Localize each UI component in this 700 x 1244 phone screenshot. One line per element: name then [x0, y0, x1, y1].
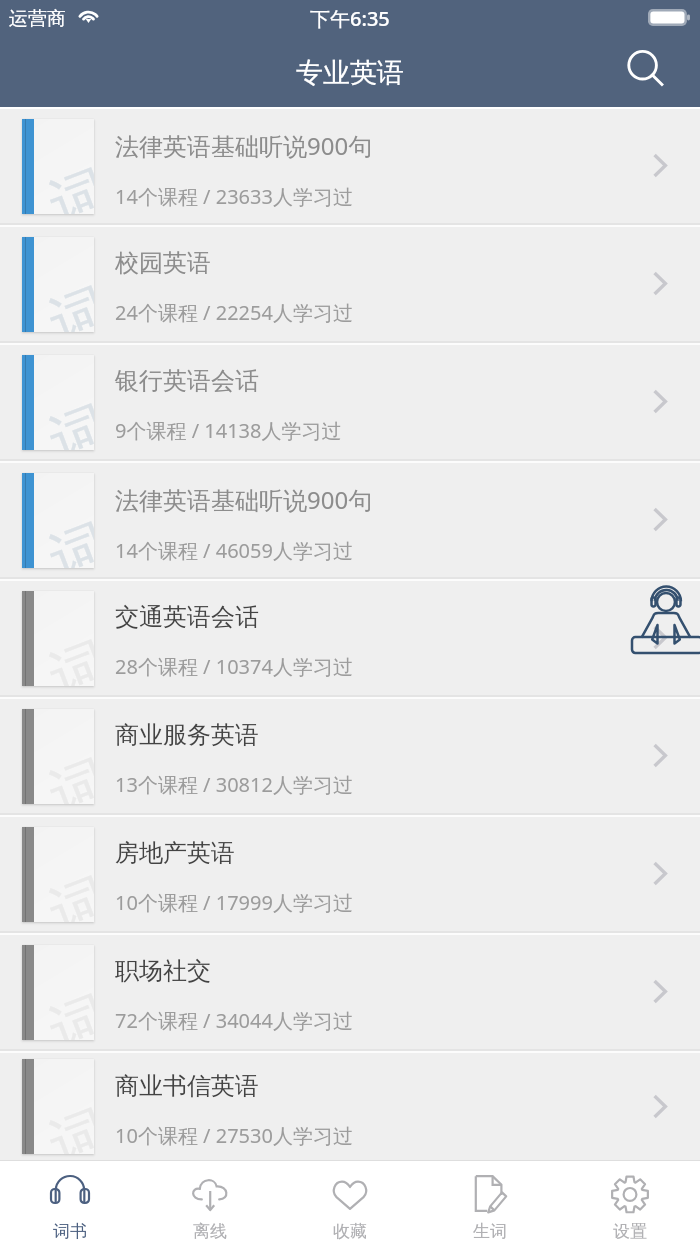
staticText: 词 [40, 273, 94, 332]
staticText: 商业服务英语 [115, 720, 259, 750]
button[interactable]: 生词 [420, 1161, 560, 1244]
staticText: 生词 [473, 1221, 507, 1242]
staticText: 9个课程 / 14138人学习过 [115, 417, 342, 444]
staticText: 14个课程 / 46059人学习过 [115, 537, 353, 564]
staticText: 词 [40, 863, 94, 922]
button[interactable]: 收藏 [280, 1161, 420, 1244]
staticText: 商业书信英语 [115, 1071, 259, 1101]
staticText: 专业英语 [296, 56, 404, 90]
staticText: 词 [40, 391, 94, 450]
staticText: 词书 [53, 1221, 87, 1242]
button[interactable]: 词 [0, 935, 700, 1053]
staticText: 24个课程 / 22254人学习过 [115, 299, 353, 326]
staticText: 词 [40, 981, 94, 1040]
staticText: 银行英语会话 [115, 366, 259, 396]
staticText: 13个课程 / 30812人学习过 [115, 771, 353, 798]
button[interactable]: 词书 [0, 1161, 140, 1244]
staticText: 词 [40, 745, 94, 804]
staticText: 10个课程 / 17999人学习过 [115, 889, 353, 916]
button[interactable]: 设置 [560, 1161, 700, 1244]
button[interactable]: 词 [0, 227, 700, 345]
button[interactable]: Search [614, 44, 670, 100]
staticText: 法律英语基础听说900句 [115, 483, 373, 516]
staticText: 10个课程 / 27530人学习过 [115, 1122, 353, 1149]
staticText: 校园英语 [115, 248, 211, 278]
staticText: 词 [40, 1095, 94, 1154]
staticText: 运营商 [9, 7, 66, 31]
staticText: 交通英语会话 [115, 602, 259, 632]
staticText: 28个课程 / 10374人学习过 [115, 653, 353, 680]
button[interactable]: 词 [0, 817, 700, 935]
button[interactable]: 词 [0, 1053, 700, 1160]
staticText: 14个课程 / 23633人学习过 [115, 183, 353, 210]
staticText: 离线 [193, 1221, 227, 1242]
staticText: 收藏 [333, 1221, 367, 1242]
staticText: 下午6:35 [310, 5, 390, 32]
button[interactable]: 词 [0, 581, 700, 699]
staticText: 法律英语基础听说900句 [115, 129, 373, 162]
button[interactable]: 词 [0, 345, 700, 463]
staticText: 职场社交 [115, 956, 211, 986]
staticText: 词 [40, 155, 94, 214]
staticText: 房地产英语 [115, 838, 235, 868]
staticText: 词 [40, 627, 94, 686]
button[interactable]: 词 [0, 463, 700, 581]
staticText: 词 [40, 509, 94, 568]
button[interactable]: 离线 [140, 1161, 280, 1244]
staticText: 72个课程 / 34044人学习过 [115, 1007, 353, 1034]
button[interactable]: 词 [0, 699, 700, 817]
button[interactable]: 词 [0, 109, 700, 227]
staticText: 设置 [613, 1221, 647, 1242]
